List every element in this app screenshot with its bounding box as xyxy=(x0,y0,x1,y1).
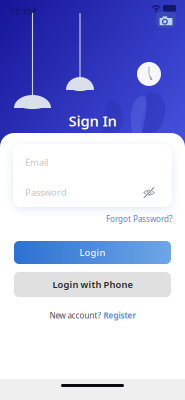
staticText: New account? xyxy=(49,310,100,321)
button[interactable]: Login with Phone xyxy=(14,272,171,297)
staticText: Password xyxy=(25,186,67,198)
staticText: Forgot Password? xyxy=(106,214,172,224)
staticText: Login xyxy=(79,246,105,259)
button[interactable]: Login xyxy=(14,241,171,264)
staticText: 11:15 xyxy=(9,5,32,17)
staticText: Sign In xyxy=(68,111,116,130)
staticText: Login with Phone xyxy=(52,278,132,291)
staticText: Register xyxy=(103,310,135,321)
button[interactable]: Register xyxy=(103,310,135,321)
staticText: Email xyxy=(25,156,48,168)
button[interactable]: Forgot Password? xyxy=(13,214,172,224)
